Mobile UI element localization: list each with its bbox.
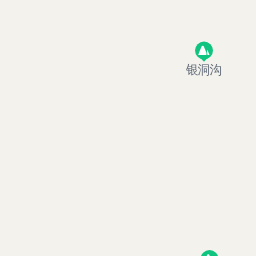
button[interactable]: 银洞沟 xyxy=(186,41,222,75)
staticText: 银洞沟 xyxy=(186,62,221,78)
button[interactable]: Map marker xyxy=(200,250,219,256)
